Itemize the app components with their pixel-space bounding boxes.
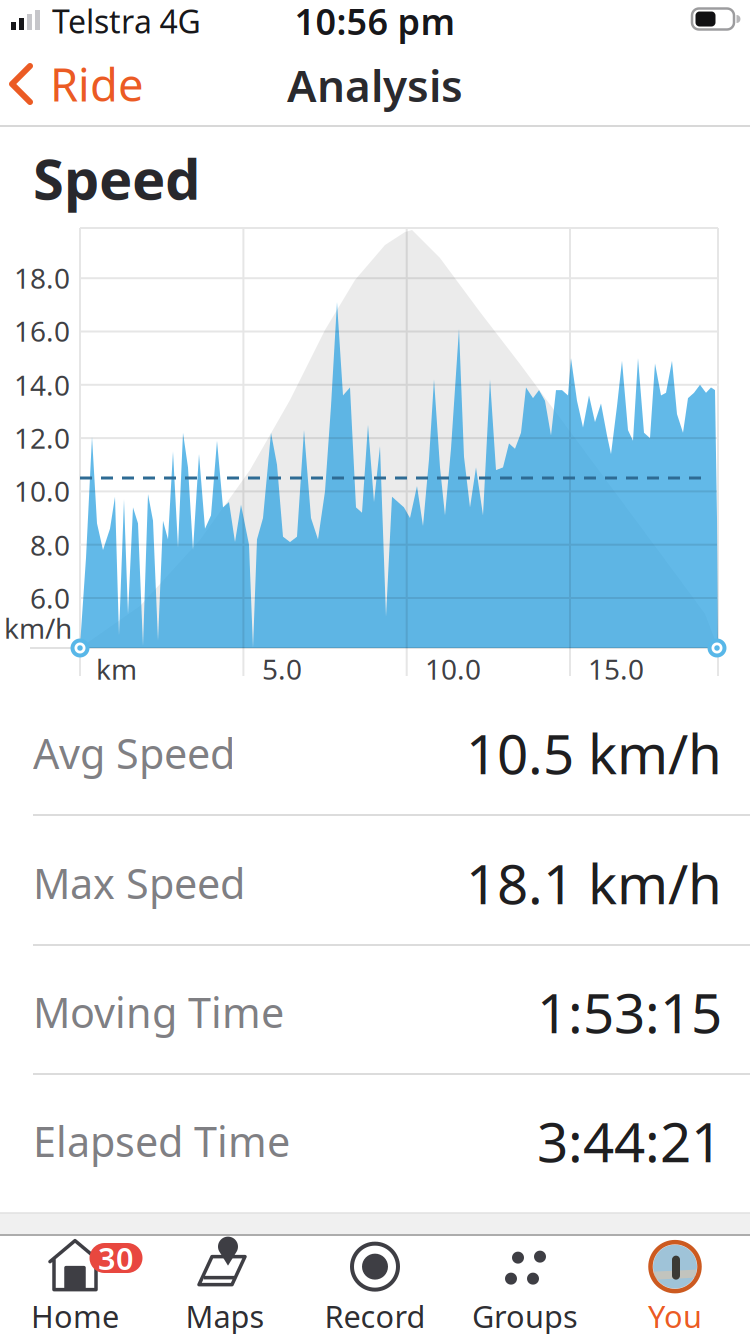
staticText: 3:44:21 (537, 1105, 722, 1177)
button[interactable]: You (601, 1236, 749, 1332)
staticText: 10.0 (14, 472, 70, 510)
staticText: Avg Speed (33, 726, 235, 780)
staticText: 18.1 km/h (466, 847, 722, 919)
staticText: 16.0 (14, 312, 70, 350)
staticText: Max Speed (33, 856, 245, 910)
staticText: 10.5 km/h (466, 717, 722, 789)
staticText: You (648, 1296, 702, 1334)
staticText: 8.0 (30, 526, 70, 564)
staticText: 4G (159, 0, 200, 42)
staticText: 1:53:15 (537, 976, 722, 1048)
staticText: Analysis (287, 56, 463, 114)
staticText: Speed (33, 141, 200, 215)
button[interactable]: Groups (451, 1236, 599, 1332)
staticText: 30 (98, 1238, 134, 1278)
staticText: km (96, 650, 137, 688)
staticText: 12.0 (14, 419, 70, 457)
staticText: 15.0 (588, 650, 644, 688)
staticText: 6.0 (30, 579, 70, 617)
staticText: Elapsed Time (33, 1114, 290, 1168)
staticText: 18.0 (14, 259, 70, 297)
button[interactable]: Maps (151, 1236, 299, 1332)
button[interactable]: Ride (8, 56, 144, 112)
button[interactable]: Home (1, 1236, 149, 1332)
staticText: Telstra (52, 0, 152, 42)
button[interactable]: Record (301, 1236, 449, 1332)
staticText: km/h (4, 609, 72, 647)
staticText: Home (31, 1296, 119, 1334)
staticText: 10:56 pm (294, 0, 455, 45)
staticText: Record (324, 1296, 425, 1334)
staticText: Groups (472, 1296, 578, 1334)
staticText: Moving Time (33, 985, 284, 1039)
staticText: Maps (185, 1296, 264, 1334)
staticText: 14.0 (14, 366, 70, 404)
staticText: 5.0 (262, 650, 302, 688)
staticText: Ride (50, 54, 144, 114)
staticText: 10.0 (425, 650, 481, 688)
